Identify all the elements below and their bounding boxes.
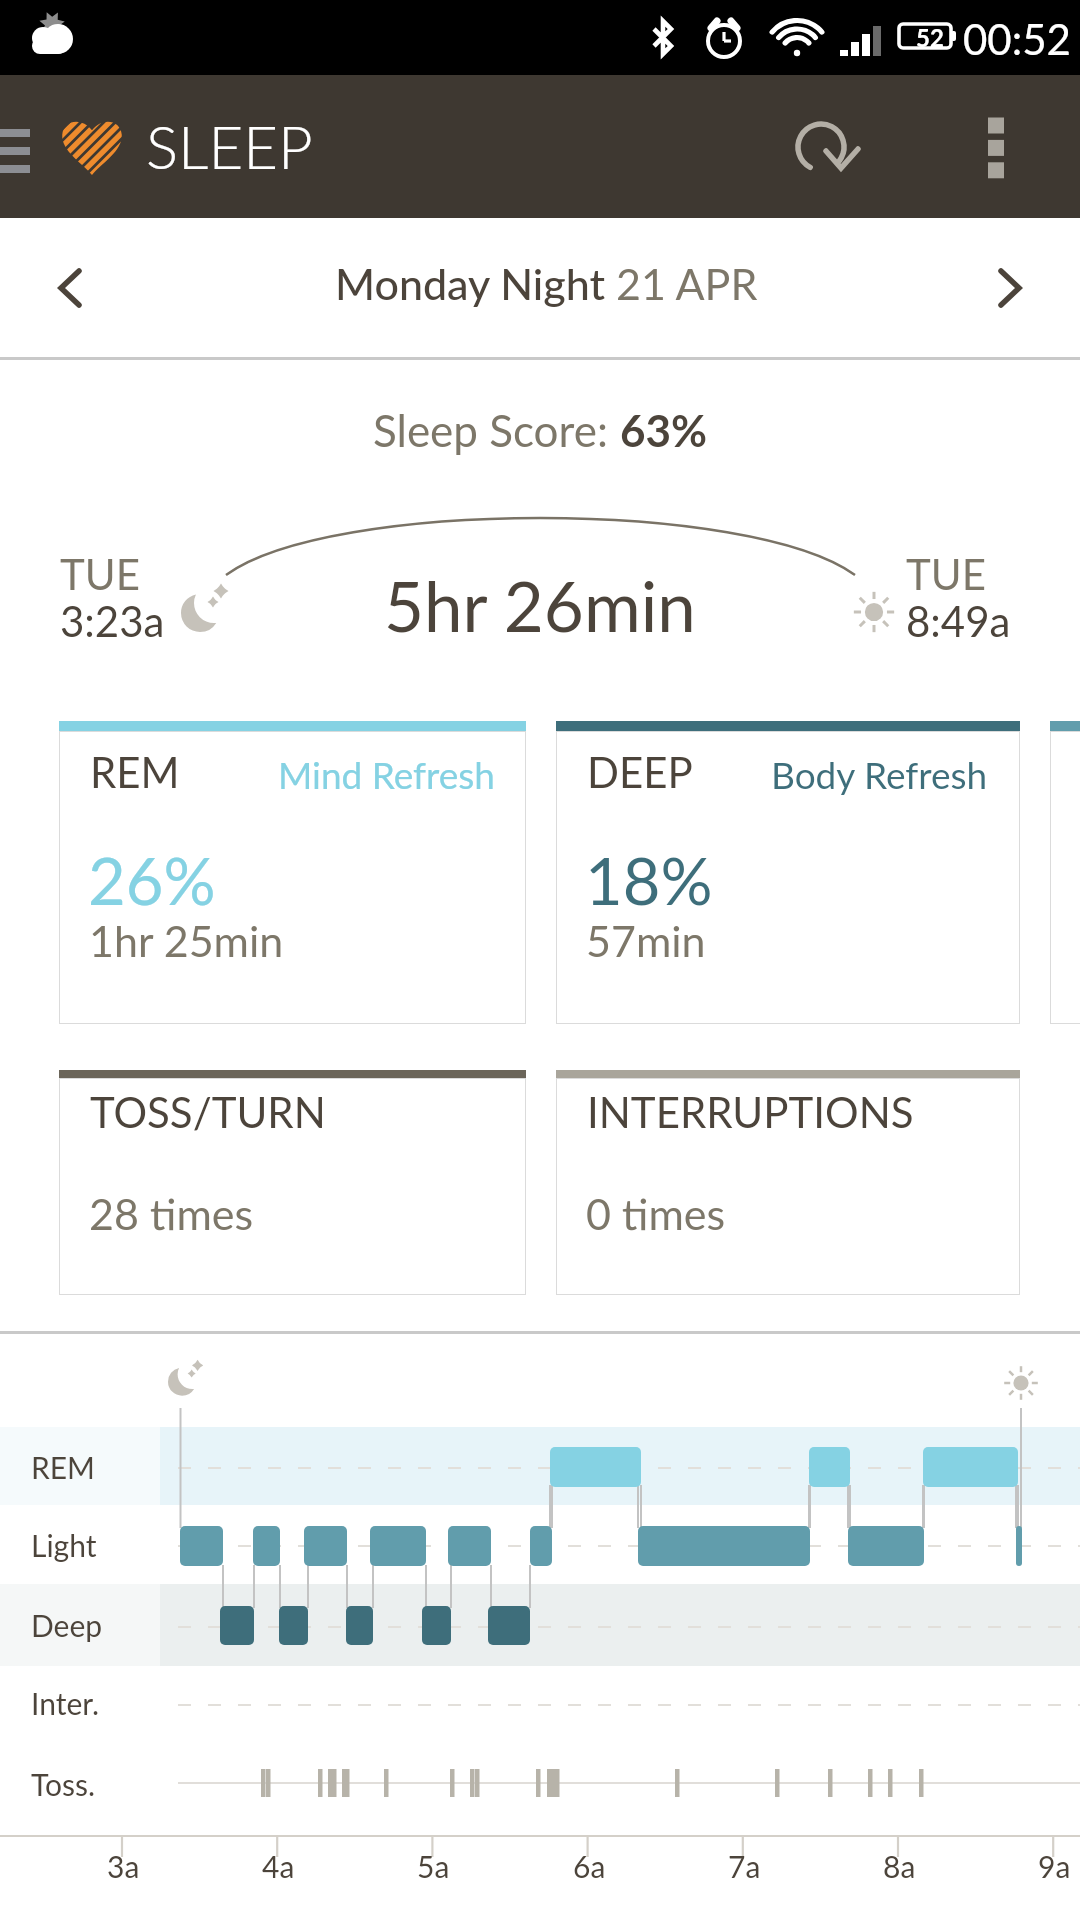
staticText: 0 times	[586, 1188, 726, 1240]
staticText: DEEP	[587, 747, 693, 797]
button[interactable]: Previous night	[0, 218, 140, 358]
staticText: SLEEP	[146, 110, 313, 182]
button[interactable]: DEEP	[556, 721, 1020, 1024]
staticText: 6a	[573, 1848, 606, 1884]
staticText: Toss.	[31, 1766, 96, 1802]
staticText: REM	[90, 747, 180, 797]
staticText: 7a	[728, 1848, 761, 1884]
staticText: 5a	[417, 1848, 450, 1884]
button[interactable]: Next night	[940, 218, 1080, 358]
staticText: 18%	[585, 841, 713, 919]
staticText: 1hr 25min	[89, 915, 284, 967]
staticText: Body Refresh	[771, 752, 988, 796]
staticText: TUE	[60, 549, 140, 599]
button[interactable]: TOSS/TURN	[59, 1070, 526, 1295]
staticText: TOSS/TURN	[90, 1087, 326, 1137]
staticText: Monday Night	[335, 258, 616, 310]
staticText: INTERRUPTIONS	[587, 1087, 914, 1137]
staticText: 3a	[107, 1848, 140, 1884]
staticText: 00:52	[963, 14, 1071, 64]
button[interactable]: INTERRUPTIONS	[556, 1070, 1020, 1295]
staticText: 3:23a	[60, 596, 165, 646]
staticText: Inter.	[31, 1685, 100, 1721]
button[interactable]: More options	[948, 75, 1060, 217]
staticText: 8a	[883, 1848, 916, 1884]
staticText: 28 times	[89, 1188, 254, 1240]
staticText: TUE	[906, 549, 986, 599]
button[interactable]: Menu	[0, 76, 42, 218]
button[interactable]: REM	[59, 721, 526, 1024]
staticText: 5hr 26min	[384, 564, 696, 647]
staticText: 8:49a	[906, 596, 1011, 646]
button[interactable]: Sync	[770, 75, 880, 217]
staticText: REM	[31, 1449, 95, 1485]
staticText: 52	[916, 23, 944, 52]
staticText: Mind Refresh	[278, 752, 496, 796]
staticText: Deep	[31, 1607, 103, 1643]
staticText: 4a	[262, 1848, 295, 1884]
staticText: 21 APR	[616, 258, 758, 310]
staticText: Light	[31, 1527, 97, 1563]
staticText: 57min	[586, 915, 706, 967]
staticText: 9a	[1038, 1848, 1071, 1884]
staticText: 26%	[88, 841, 216, 919]
staticText: Sleep Score:	[373, 404, 620, 457]
staticText: 63%	[620, 404, 708, 457]
